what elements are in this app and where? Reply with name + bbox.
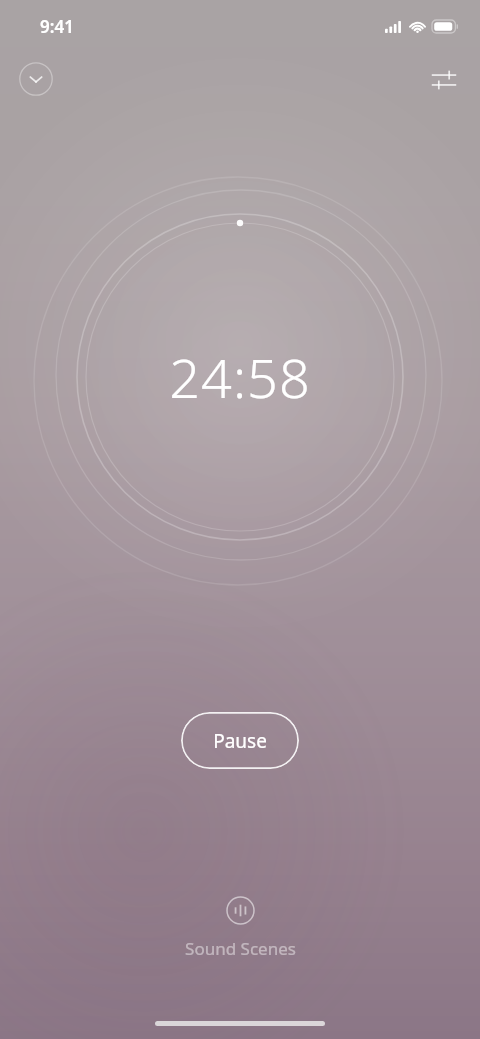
staticText: 9:41 xyxy=(40,15,74,38)
button[interactable]: Sound Scenes xyxy=(157,890,324,966)
button[interactable]: Pause xyxy=(181,712,299,769)
staticText: Sound Scenes xyxy=(185,937,296,960)
button[interactable]: Collapse xyxy=(19,62,53,96)
button[interactable]: Settings xyxy=(426,62,462,98)
staticText: Pause xyxy=(213,728,267,754)
staticText: 24:58 xyxy=(169,340,311,414)
